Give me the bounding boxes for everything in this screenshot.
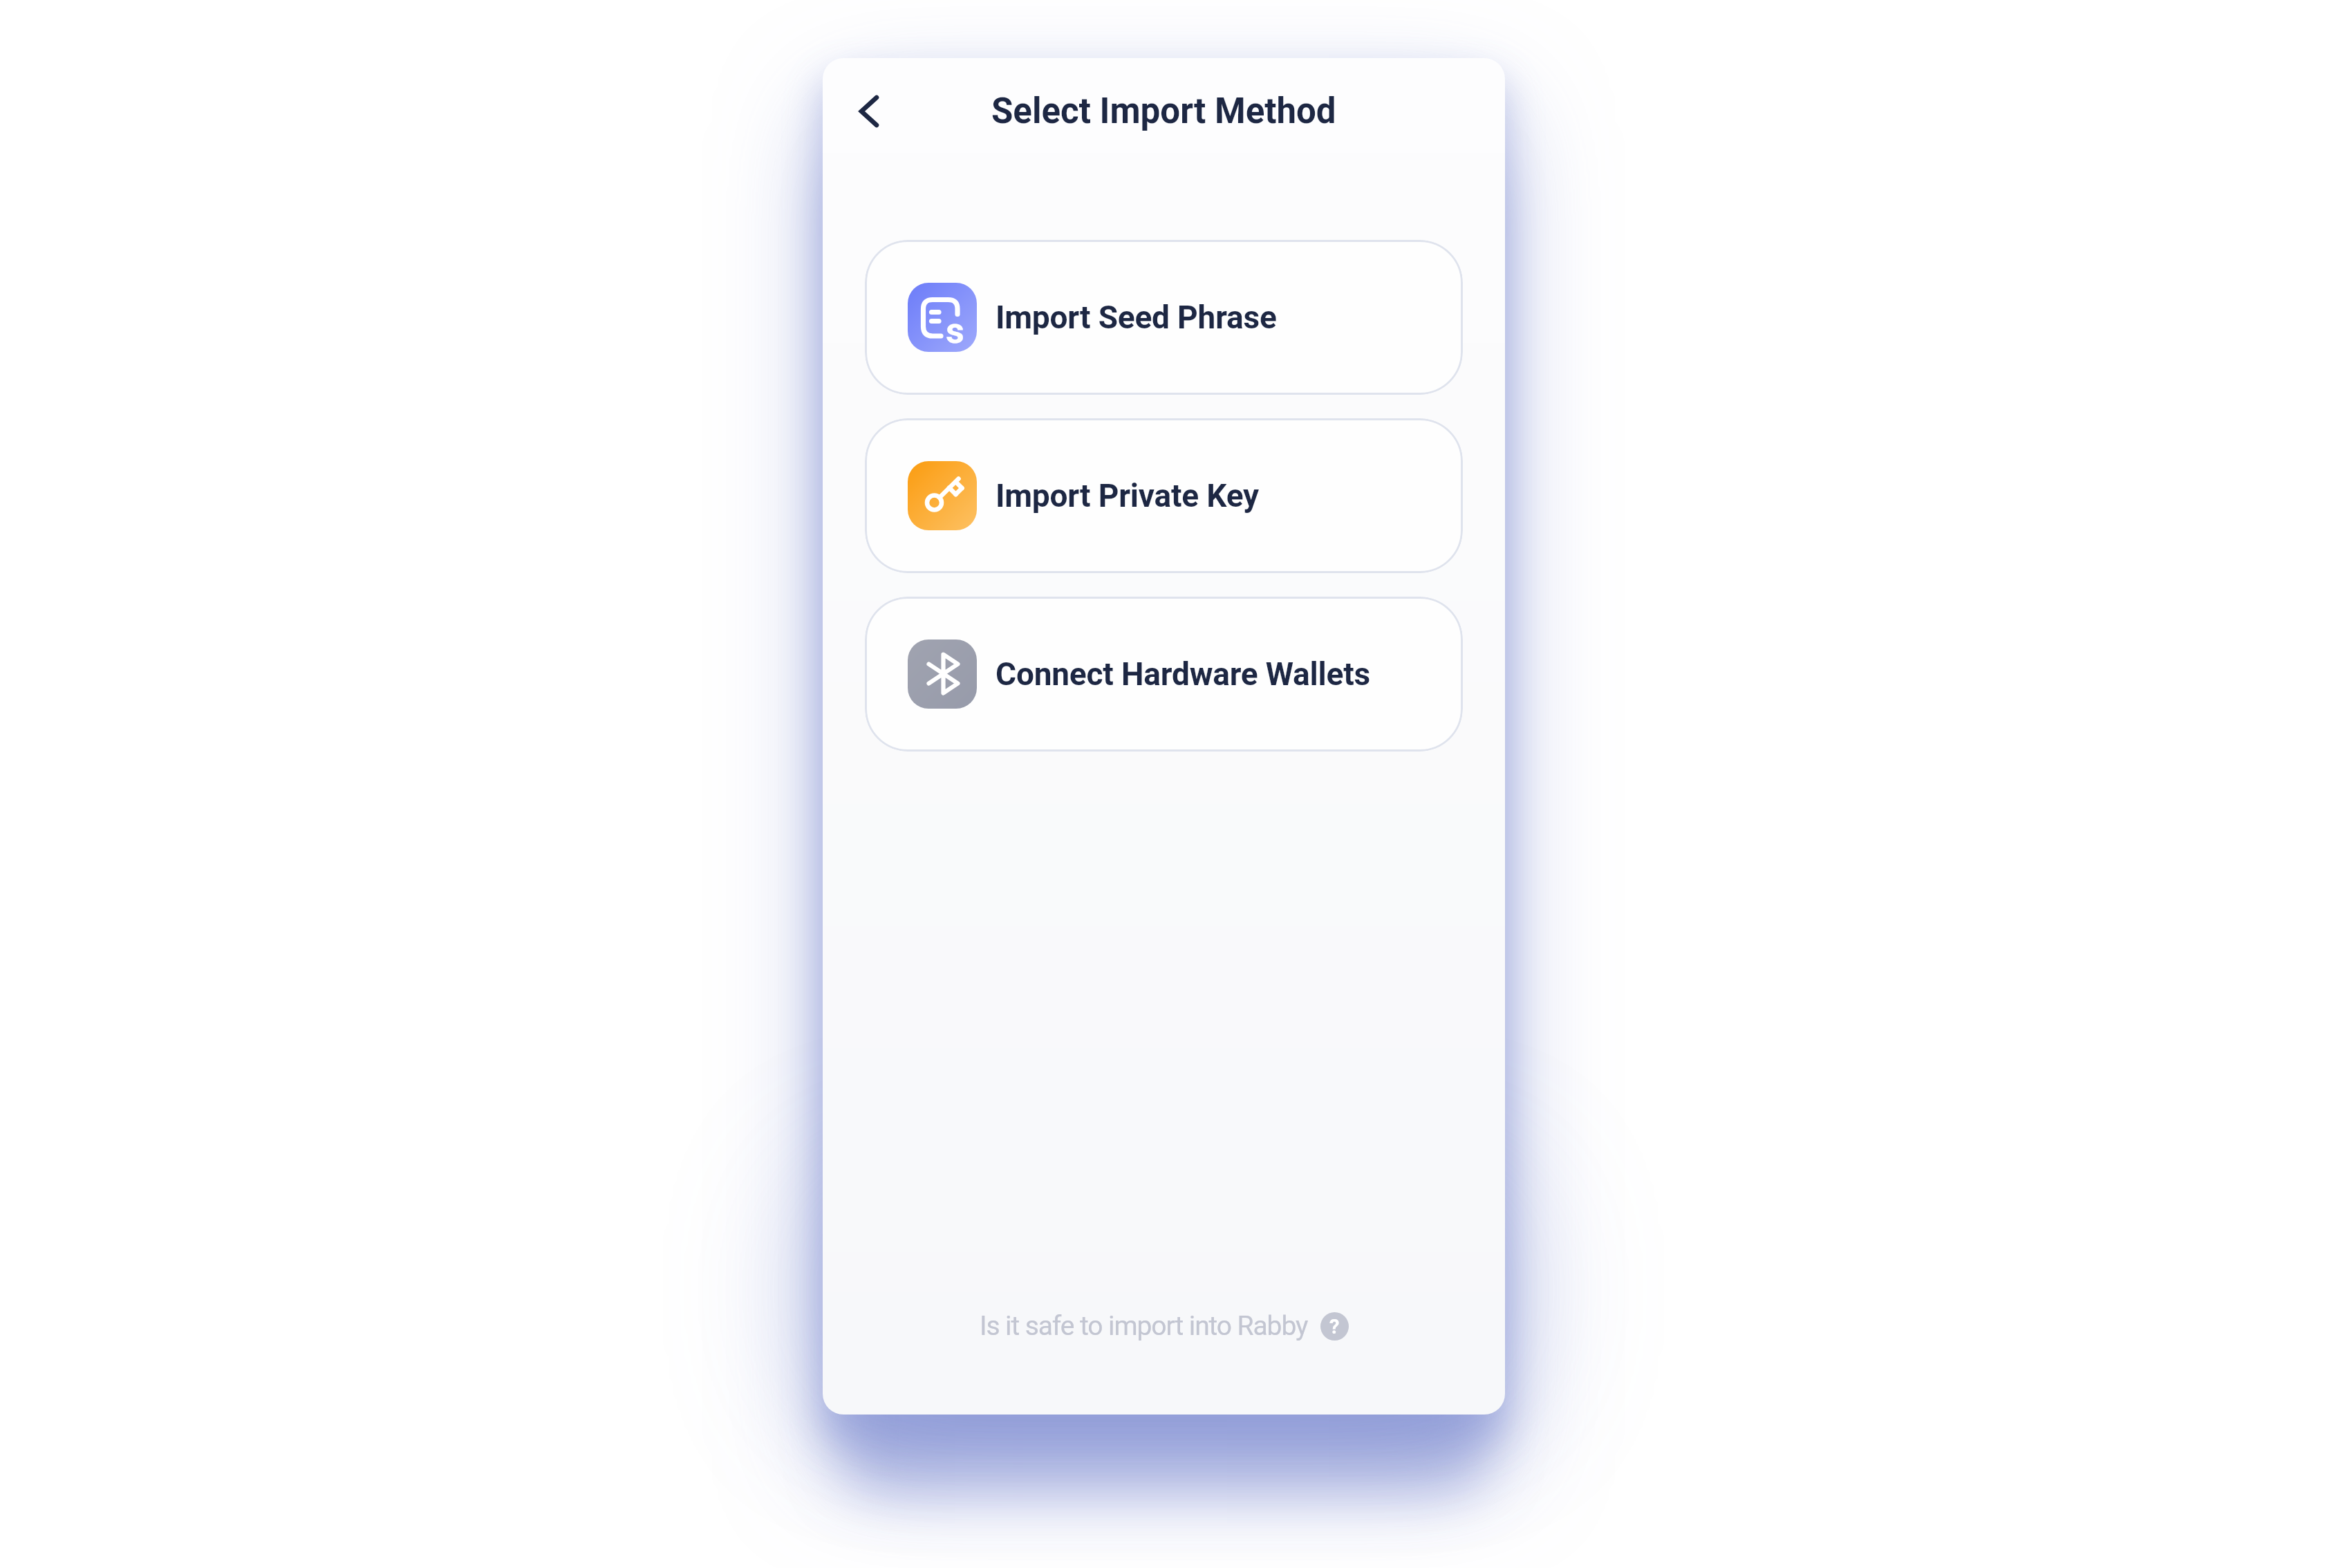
staticText: Import Seed Phrase [996, 299, 1277, 336]
staticText: ? [1329, 1315, 1340, 1338]
staticText: s [946, 310, 964, 352]
button[interactable]: Import Private Key [865, 418, 1463, 573]
staticText: Connect Hardware Wallets [996, 655, 1371, 693]
staticText: Import Private Key [996, 477, 1259, 514]
button[interactable]: Is it safe to import into Rabby [823, 1310, 1505, 1342]
button[interactable]: Back [840, 82, 898, 140]
button[interactable]: Connect Hardware Wallets [865, 597, 1463, 752]
staticText: Is it safe to import into Rabby [980, 1310, 1308, 1342]
button[interactable]: s [865, 240, 1463, 395]
staticText: Select Import Method [991, 91, 1336, 132]
